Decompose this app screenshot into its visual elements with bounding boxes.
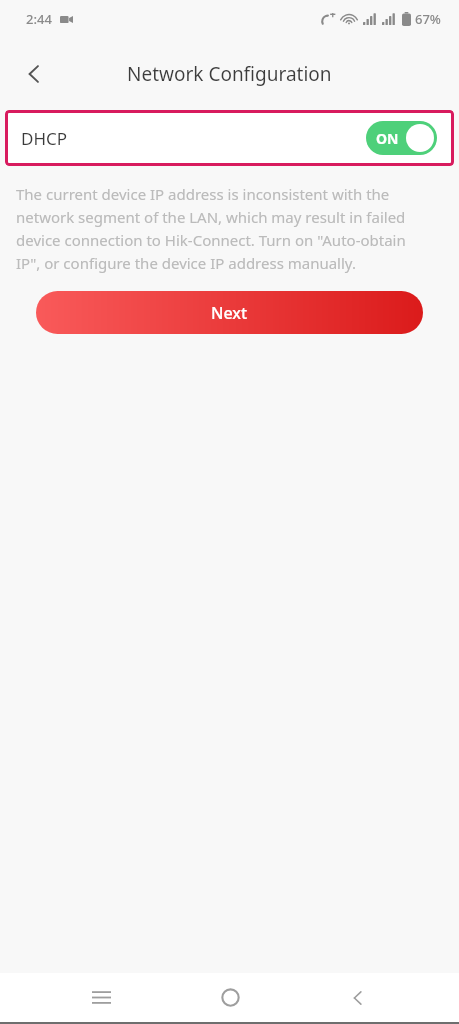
staticText: ON: [376, 129, 399, 148]
staticText: The current device IP address is inconsi…: [16, 184, 433, 273]
button[interactable]: DHCP toggle, on: [366, 121, 437, 155]
staticText: Network Configuration: [127, 61, 332, 87]
button[interactable]: Recent apps: [73, 973, 129, 1022]
staticText: 2:44: [26, 10, 52, 28]
button[interactable]: Back: [330, 973, 386, 1022]
button[interactable]: Next: [36, 291, 423, 334]
button[interactable]: Back: [8, 48, 60, 100]
staticText: DHCP: [21, 127, 68, 150]
button[interactable]: Home: [202, 973, 258, 1022]
staticText: 67%: [415, 10, 441, 28]
button[interactable]: DHCP: [5, 110, 454, 166]
staticText: Next: [211, 302, 248, 324]
